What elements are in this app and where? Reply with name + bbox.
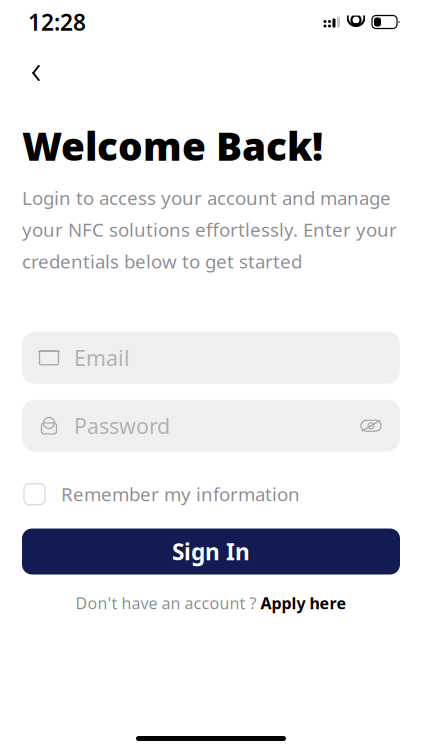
button[interactable]: Sign In	[22, 528, 400, 574]
staticText: Password	[74, 412, 170, 440]
button[interactable]: Back	[18, 56, 54, 90]
staticText: Sign In	[172, 536, 250, 567]
staticText: Email	[74, 344, 130, 372]
staticText: 12:28	[28, 7, 86, 37]
button[interactable]: Email	[22, 332, 400, 384]
button[interactable]: Password	[22, 400, 400, 452]
button[interactable]: Remember my information	[24, 478, 398, 510]
staticText: Login to access your account and manage …	[22, 185, 397, 274]
staticText: Welcome Back!	[22, 120, 323, 171]
button[interactable]: Show password	[360, 418, 382, 434]
button[interactable]: Don't have an account ?	[65, 586, 356, 620]
staticText: Don't have an account ?	[75, 592, 256, 614]
staticText: Apply here	[260, 592, 346, 614]
staticText: Remember my information	[61, 482, 300, 506]
